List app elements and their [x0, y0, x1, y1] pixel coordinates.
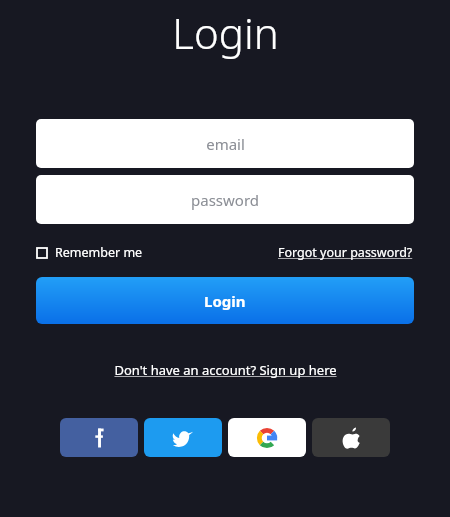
- button[interactable]: Login: [36, 277, 414, 324]
- button[interactable]: Sign in with Apple: [312, 418, 390, 457]
- staticText: Remember me: [55, 244, 143, 261]
- button[interactable]: Don't have an account? Sign up here: [114, 361, 337, 379]
- staticText: email: [206, 134, 245, 154]
- button[interactable]: email: [36, 119, 414, 168]
- button[interactable]: Sign in with Google: [228, 418, 306, 457]
- button[interactable]: Remember me: [37, 244, 143, 261]
- button[interactable]: Sign in with Facebook: [60, 418, 138, 457]
- staticText: password: [191, 190, 259, 210]
- button[interactable]: Sign in with Twitter: [144, 418, 222, 457]
- button[interactable]: Forgot your password?: [278, 244, 413, 261]
- staticText: Login: [172, 4, 279, 61]
- staticText: Login: [204, 291, 246, 311]
- button[interactable]: password: [36, 175, 414, 224]
